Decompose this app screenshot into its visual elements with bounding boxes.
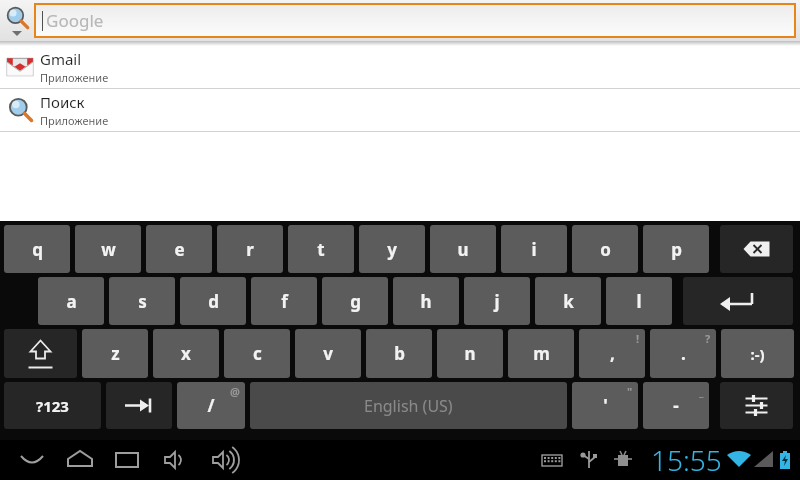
button[interactable]: t — [288, 225, 354, 273]
staticText: Google — [46, 9, 104, 32]
button[interactable]: Shift — [4, 329, 77, 378]
staticText: @ — [230, 384, 240, 399]
staticText: i — [531, 238, 537, 261]
button[interactable]: Tab — [106, 382, 172, 429]
staticText: . — [681, 342, 686, 365]
button[interactable]: Volume down — [152, 440, 200, 480]
button[interactable]: , — [579, 329, 645, 378]
button[interactable]: u — [430, 225, 496, 273]
staticText: q — [32, 238, 43, 261]
staticText: j — [494, 290, 500, 313]
button[interactable]: Поиск — [0, 89, 800, 132]
button[interactable]: r — [217, 225, 283, 273]
button[interactable]: q — [4, 225, 70, 273]
staticText: , — [610, 342, 615, 365]
button[interactable]: Google — [36, 5, 794, 36]
button[interactable]: English (US) — [250, 382, 567, 429]
staticText: l — [636, 290, 642, 313]
staticText: s — [138, 290, 147, 313]
button[interactable]: c — [224, 329, 290, 378]
staticText: 15:55 — [651, 441, 722, 479]
button[interactable]: f — [251, 277, 317, 325]
staticText: b — [394, 342, 405, 365]
staticText: ' — [603, 394, 608, 417]
staticText: Приложение — [40, 70, 109, 85]
button[interactable]: Recents — [104, 440, 152, 480]
staticText: f — [281, 290, 288, 313]
button[interactable]: Home — [56, 440, 104, 480]
button[interactable]: - — [643, 382, 709, 429]
button[interactable]: :-) — [721, 329, 794, 378]
staticText: g — [350, 290, 361, 313]
button[interactable]: o — [572, 225, 638, 273]
button[interactable]: v — [295, 329, 361, 378]
button[interactable]: / — [177, 382, 245, 429]
staticText: e — [174, 238, 185, 261]
staticText: k — [563, 290, 574, 313]
staticText: Поиск — [40, 92, 85, 112]
staticText: t — [317, 238, 325, 261]
button[interactable]: Backspace — [720, 225, 793, 273]
button[interactable]: w — [75, 225, 141, 273]
staticText: - — [673, 394, 679, 417]
button[interactable]: Back — [8, 440, 56, 480]
button[interactable]: Gmail — [0, 46, 800, 89]
staticText: z — [111, 342, 120, 365]
staticText: _ — [699, 384, 704, 399]
button[interactable]: n — [437, 329, 503, 378]
staticText: d — [208, 290, 219, 313]
staticText: English (US) — [364, 395, 453, 417]
staticText: o — [600, 238, 611, 261]
staticText: y — [387, 238, 397, 261]
staticText: ?123 — [36, 396, 69, 416]
staticText: ? — [705, 331, 711, 346]
staticText: ! — [636, 331, 640, 346]
button[interactable]: Volume up — [200, 440, 248, 480]
staticText: Приложение — [40, 113, 109, 128]
staticText: v — [323, 342, 333, 365]
button[interactable]: ' — [572, 382, 638, 429]
button[interactable]: j — [464, 277, 530, 325]
button[interactable]: x — [153, 329, 219, 378]
button[interactable]: k — [535, 277, 601, 325]
button[interactable]: m — [508, 329, 574, 378]
staticText: / — [207, 394, 215, 417]
staticText: Gmail — [40, 49, 82, 69]
staticText: :-) — [750, 344, 765, 364]
button[interactable]: Keyboard settings — [720, 382, 793, 429]
button[interactable]: a — [38, 277, 104, 325]
staticText: w — [101, 238, 116, 261]
button[interactable]: e — [146, 225, 212, 273]
button[interactable]: h — [393, 277, 459, 325]
button[interactable]: i — [501, 225, 567, 273]
button[interactable]: b — [366, 329, 432, 378]
button[interactable]: . — [650, 329, 716, 378]
staticText: u — [457, 238, 469, 261]
staticText: c — [253, 342, 262, 365]
staticText: n — [464, 342, 476, 365]
staticText: x — [181, 342, 191, 365]
button[interactable]: y — [359, 225, 425, 273]
staticText: h — [420, 290, 432, 313]
staticText: a — [66, 290, 77, 313]
button[interactable]: d — [180, 277, 246, 325]
button[interactable]: z — [82, 329, 148, 378]
staticText: p — [671, 238, 682, 261]
button[interactable]: ?123 — [4, 382, 101, 429]
staticText: r — [246, 238, 254, 261]
button[interactable]: g — [322, 277, 388, 325]
button[interactable]: Enter — [683, 277, 793, 325]
button[interactable]: l — [606, 277, 672, 325]
button[interactable]: Search provider — [0, 0, 34, 41]
button[interactable]: p — [643, 225, 709, 273]
staticText: m — [533, 342, 550, 365]
button[interactable]: s — [109, 277, 175, 325]
staticText: " — [627, 384, 633, 399]
